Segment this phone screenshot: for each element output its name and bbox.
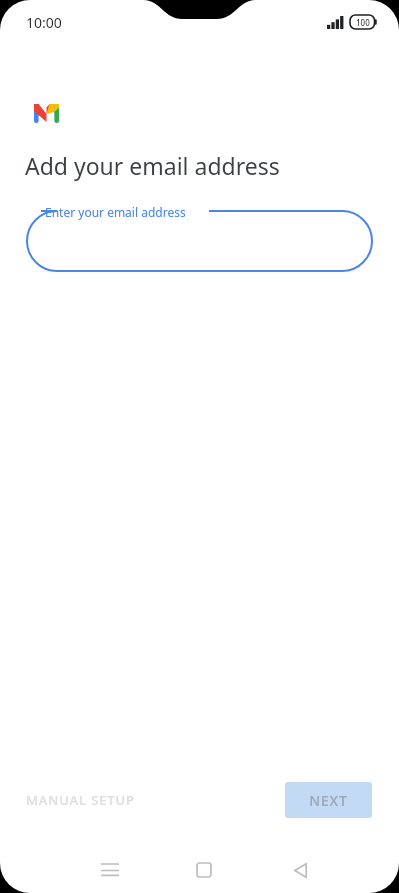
button[interactable]: Recent apps — [86, 847, 134, 893]
staticText: 10:00 — [26, 13, 62, 32]
button[interactable]: Back — [276, 847, 324, 893]
staticText: NEXT — [309, 791, 348, 810]
staticText: 100 — [356, 17, 370, 28]
button[interactable]: NEXT — [285, 782, 372, 818]
staticText: Add your email address — [25, 150, 280, 181]
button[interactable]: Home — [180, 847, 228, 893]
staticText: Enter your email address — [45, 204, 186, 220]
button[interactable]: Enter your email address — [0, 200, 399, 272]
staticText: MANUAL SETUP — [26, 791, 135, 809]
button[interactable]: MANUAL SETUP — [16, 783, 145, 817]
